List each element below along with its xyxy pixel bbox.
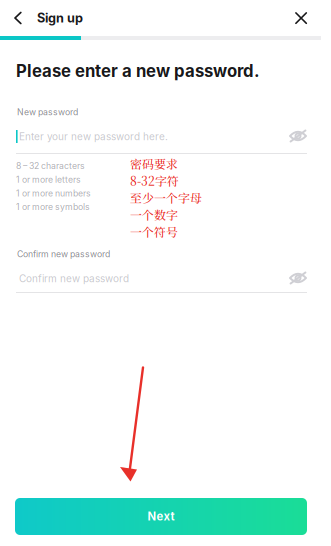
button[interactable]: Close [288, 5, 314, 31]
staticText: Enter your new password here. [19, 130, 168, 143]
staticText: 一个符号 [130, 223, 178, 240]
button[interactable]: Back [6, 5, 30, 31]
staticText: New password [17, 107, 78, 117]
staticText: Confirm new password [17, 249, 110, 259]
staticText: 1 or more symbols [16, 202, 90, 212]
staticText: 8 – 32 characters [16, 161, 85, 171]
staticText: Please enter a new password. [16, 61, 260, 81]
staticText: Next [147, 510, 174, 523]
button[interactable]: Next [15, 498, 307, 535]
staticText: 1 or more numbers [16, 188, 91, 198]
staticText: 1 or more letters [16, 174, 81, 185]
staticText: 8-32字符 [130, 172, 179, 189]
staticText: Sign up [37, 10, 83, 26]
staticText: 至少一个字母 [130, 189, 202, 206]
staticText: Confirm new password [19, 272, 129, 285]
button[interactable]: New password [16, 107, 307, 154]
staticText: 密码要求 [130, 155, 178, 172]
staticText: 一个数字 [130, 206, 178, 223]
button[interactable]: Confirm new password [16, 249, 307, 293]
